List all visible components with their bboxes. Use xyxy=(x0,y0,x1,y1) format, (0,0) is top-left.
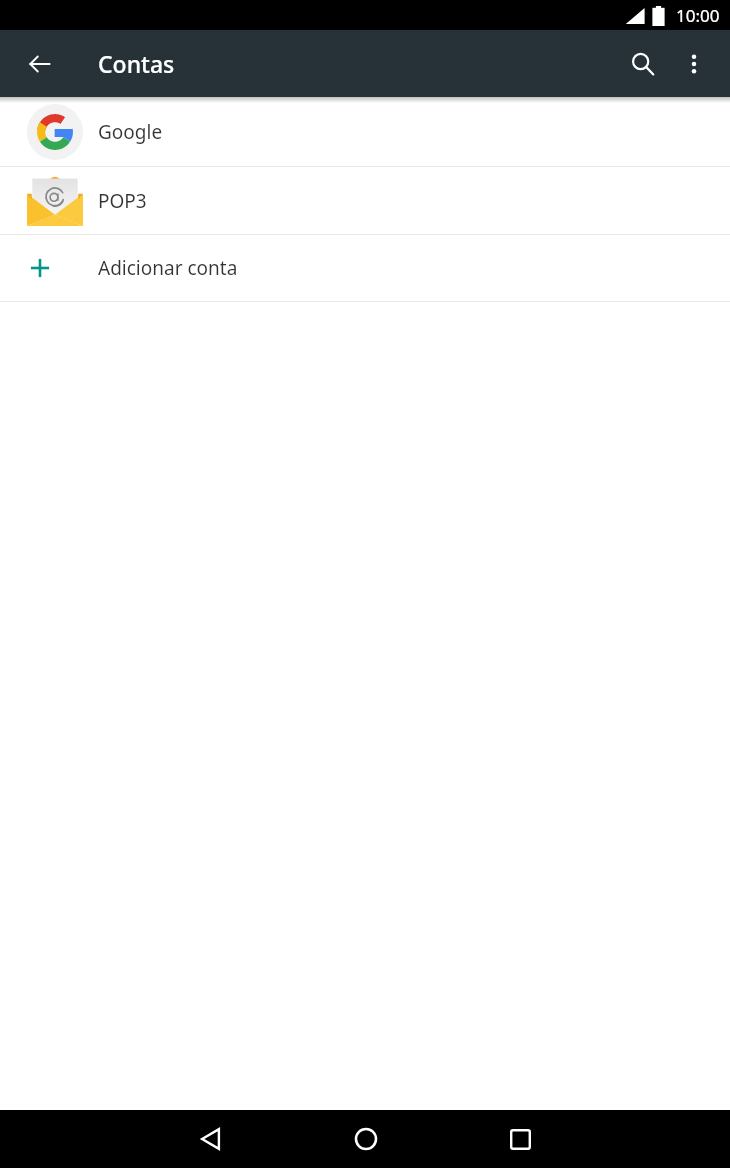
button[interactable]: Adicionar conta xyxy=(0,235,730,301)
staticText: Contas xyxy=(98,48,175,79)
button[interactable]: Search xyxy=(618,40,666,88)
button[interactable]: Recents xyxy=(484,1110,557,1168)
button[interactable]: Back xyxy=(16,40,64,88)
staticText: POP3 xyxy=(98,188,147,214)
button[interactable]: Home xyxy=(329,1110,402,1168)
staticText: Google xyxy=(98,119,163,145)
staticText: Adicionar conta xyxy=(98,255,238,281)
button[interactable]: More options xyxy=(670,40,718,88)
button[interactable]: Back xyxy=(174,1110,247,1168)
button[interactable]: Google xyxy=(0,97,730,166)
staticText: 10:00 xyxy=(676,4,720,27)
button[interactable]: POP3 xyxy=(0,167,730,234)
